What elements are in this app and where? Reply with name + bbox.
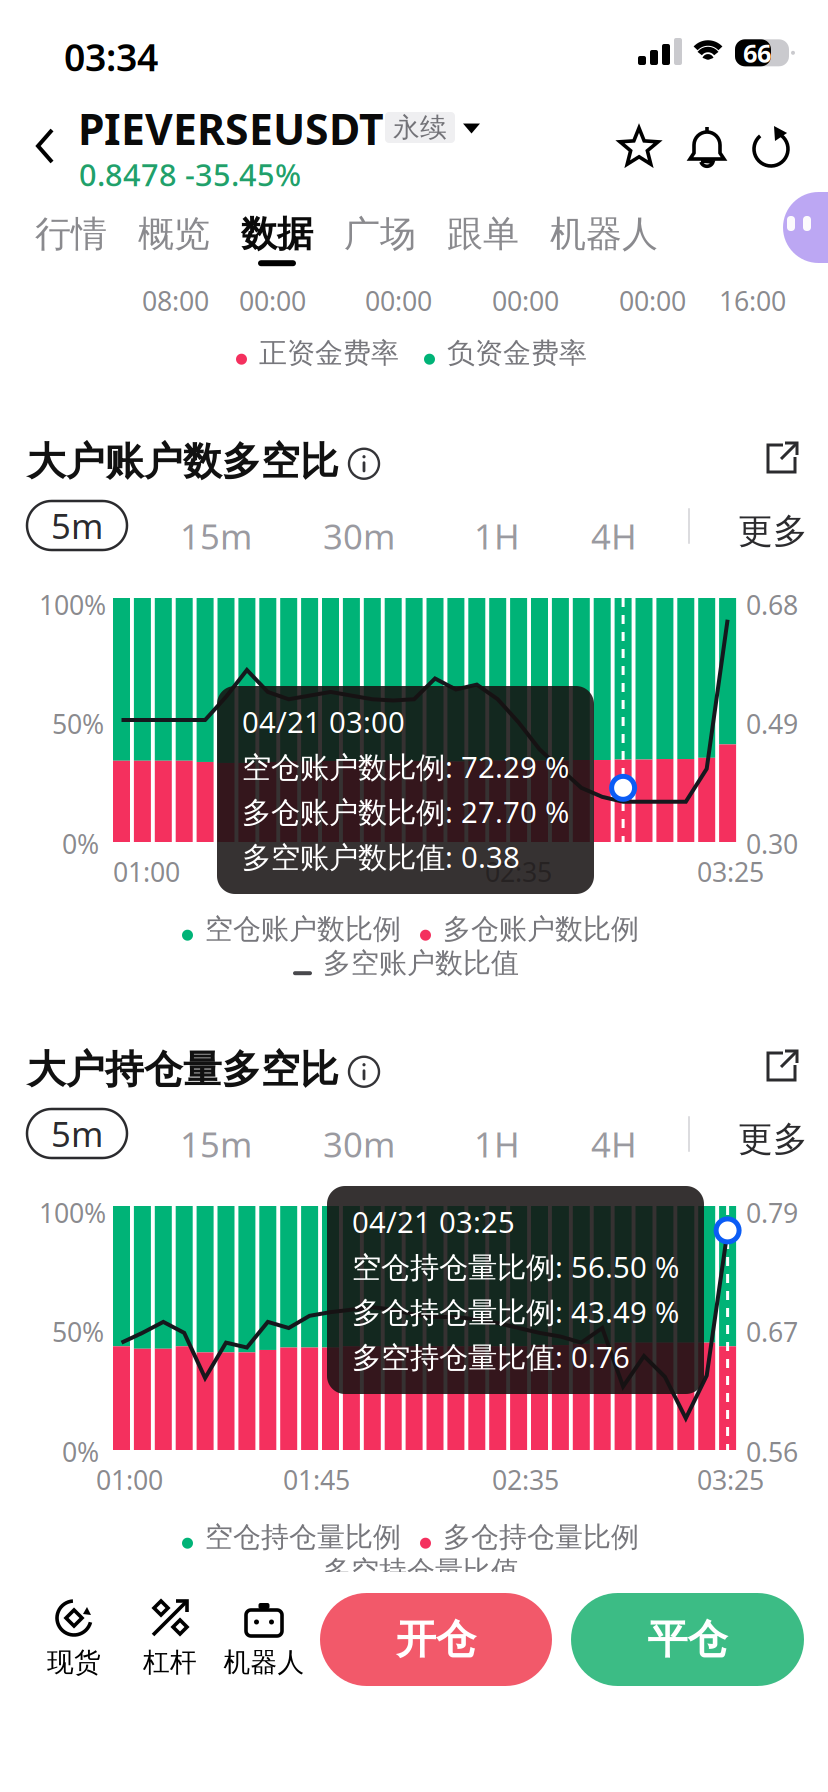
staticText: 多空持仓量比值 [323,1554,519,1588]
staticText: 00:00 [239,283,306,318]
button[interactable]: 平仓 [571,1593,804,1686]
staticText: 更多 [738,510,808,553]
staticText: 02:35 [492,1462,559,1497]
button[interactable]: 行情 [35,212,107,266]
button[interactable]: 概览 [107,212,210,266]
staticText: 1H [474,1121,520,1167]
staticText: 杠杆 [143,1646,197,1679]
staticText: 4H [591,1121,637,1167]
button[interactable]: 15m [180,1121,252,1167]
staticText: 03:25 [697,1462,764,1497]
staticText: 0% [62,826,99,861]
staticText: 平仓 [647,1615,727,1664]
button[interactable]: 5m [27,1109,127,1158]
staticText: 概览 [138,212,210,256]
staticText: 00:00 [619,283,686,318]
staticText: 04/21 03:25 [352,1202,515,1241]
staticText: 大户持仓量多空比 [27,1046,339,1093]
staticText: 0.56 [746,1434,798,1469]
staticText: 多仓持仓量比例: 43.49 % [352,1292,679,1331]
button[interactable]: 杠杆 [130,1598,210,1679]
staticText: 0.79 [746,1195,798,1230]
button[interactable]: 1H [474,513,520,559]
staticText: 多仓持仓量比例 [443,1520,639,1554]
staticText: 01:45 [283,1462,350,1497]
staticText: 100% [39,587,106,622]
button[interactable]: Favorite [618,126,660,170]
button[interactable]: 开仓 [320,1593,552,1686]
staticText: 5m [51,1110,103,1156]
button[interactable]: 机器人 [223,1598,305,1679]
button[interactable]: 数据 [210,212,313,266]
staticText: 0.30 [746,826,798,861]
staticText: 04/21 03:00 [242,702,405,741]
staticText: 空仓账户数比例: 72.29 % [242,747,569,786]
button[interactable]: Expand chart [764,1048,800,1084]
button[interactable]: 现货 [34,1598,114,1679]
staticText: 负资金费率 [447,336,587,370]
staticText: 机器人 [223,1646,304,1679]
button[interactable]: 5m [27,501,127,550]
staticText: 广场 [344,212,416,256]
staticText: 0% [62,1434,99,1469]
staticText: 00:00 [492,283,559,318]
staticText: 0.49 [746,706,798,741]
button[interactable]: 30m [323,513,395,559]
staticText: 多空账户数比值: 0.38 [242,837,520,876]
staticText: 16:00 [719,283,786,318]
staticText: 30m [323,1121,395,1167]
staticText: 多空账户数比值 [323,946,519,980]
staticText: 正资金费率 [259,336,399,370]
button[interactable]: 更多 [738,510,808,553]
button[interactable]: 广场 [313,212,416,266]
staticText: 0.8478 -35.45% [79,154,301,195]
staticText: 跟单 [447,212,519,256]
staticText: 机器人 [550,212,658,256]
staticText: 50% [52,706,104,741]
staticText: 空仓持仓量比例 [205,1520,401,1554]
button[interactable]: Expand chart [764,440,800,476]
staticText: 1H [474,513,520,559]
staticText: 永续 [393,111,447,144]
staticText: 多仓账户数比例: 27.70 % [242,792,569,831]
staticText: 01:00 [113,854,180,889]
staticText: 100% [39,1195,106,1230]
staticText: 30m [323,513,395,559]
staticText: 03:34 [64,32,158,82]
staticText: 空仓账户数比例 [205,912,401,946]
staticText: 15m [180,513,252,559]
button[interactable]: 机器人 [519,212,658,266]
staticText: 行情 [35,212,107,256]
staticText: 66 [743,36,771,70]
staticText: 大户账户数多空比 [27,438,339,485]
staticText: 现货 [47,1646,101,1679]
staticText: 空仓持仓量比例: 56.50 % [352,1247,679,1286]
button[interactable]: 30m [323,1121,395,1167]
staticText: 多仓账户数比例 [443,912,639,946]
button[interactable]: 4H [591,1121,637,1167]
button[interactable]: 永续 [385,112,480,143]
button[interactable]: Alerts [686,126,728,168]
button[interactable]: Share [751,126,793,168]
button[interactable]: 更多 [738,1118,808,1161]
staticText: 5m [51,502,103,548]
button[interactable]: 跟单 [416,212,519,266]
button[interactable]: 4H [591,513,637,559]
staticText: 更多 [738,1118,808,1161]
staticText: 开仓 [396,1615,476,1664]
staticText: 15m [180,1121,252,1167]
staticText: 01:00 [96,1462,163,1497]
staticText: 02:35 [485,854,552,889]
staticText: 08:00 [142,283,209,318]
staticText: 50% [52,1314,104,1349]
staticText: 03:25 [697,854,764,889]
staticText: 00:00 [365,283,432,318]
button[interactable]: 1H [474,1121,520,1167]
staticText: 数据 [241,212,313,256]
staticText: 多空持仓量比值: 0.76 [352,1337,630,1376]
staticText: 4H [591,513,637,559]
staticText: PIEVERSEUSDT [78,100,384,157]
staticText: 0.68 [746,587,798,622]
button[interactable]: Back [35,128,55,164]
button[interactable]: 15m [180,513,252,559]
